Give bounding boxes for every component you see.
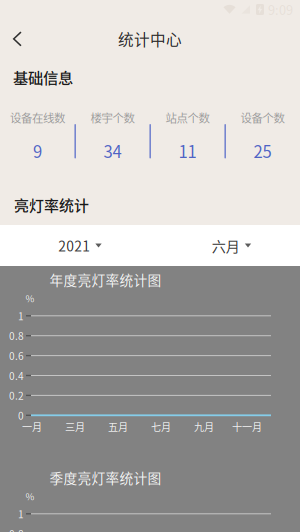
- staticText: 11: [178, 139, 196, 163]
- staticText: 1: [18, 506, 24, 521]
- staticText: 2021: [58, 235, 90, 256]
- staticText: 九月: [194, 419, 214, 434]
- button[interactable]: 返回: [0, 23, 44, 55]
- staticText: 1: [18, 308, 24, 323]
- staticText: 年度亮灯率统计图: [49, 270, 161, 289]
- staticText: 0.2: [9, 388, 24, 403]
- staticText: 五月: [108, 419, 128, 434]
- staticText: 25: [253, 139, 271, 163]
- staticText: 0.6: [9, 348, 24, 363]
- staticText: 34: [103, 139, 121, 163]
- staticText: 0.8: [9, 526, 24, 532]
- staticText: 楼宇个数: [90, 109, 134, 126]
- staticText: 亮灯率统计: [14, 194, 89, 216]
- staticText: 9:09: [268, 0, 293, 19]
- staticText: %: [25, 489, 34, 503]
- staticText: 十一月: [232, 419, 262, 434]
- staticText: 0.4: [9, 368, 24, 383]
- staticText: 季度亮灯率统计图: [49, 468, 161, 487]
- staticText: 统计中心: [118, 28, 182, 50]
- staticText: %: [25, 291, 34, 305]
- staticText: 设备个数: [240, 109, 284, 126]
- staticText: 0: [18, 408, 24, 423]
- staticText: 设备在线数: [10, 109, 65, 126]
- staticText: 一月: [22, 419, 42, 434]
- button[interactable]: 六月: [150, 225, 300, 266]
- staticText: 六月: [212, 235, 240, 256]
- staticText: 站点个数: [165, 109, 209, 126]
- staticText: 三月: [65, 419, 85, 434]
- button[interactable]: 2021: [0, 225, 150, 266]
- staticText: 9: [33, 139, 42, 163]
- staticText: 七月: [151, 419, 171, 434]
- staticText: 基础信息: [13, 66, 73, 88]
- staticText: 0.8: [9, 328, 24, 343]
